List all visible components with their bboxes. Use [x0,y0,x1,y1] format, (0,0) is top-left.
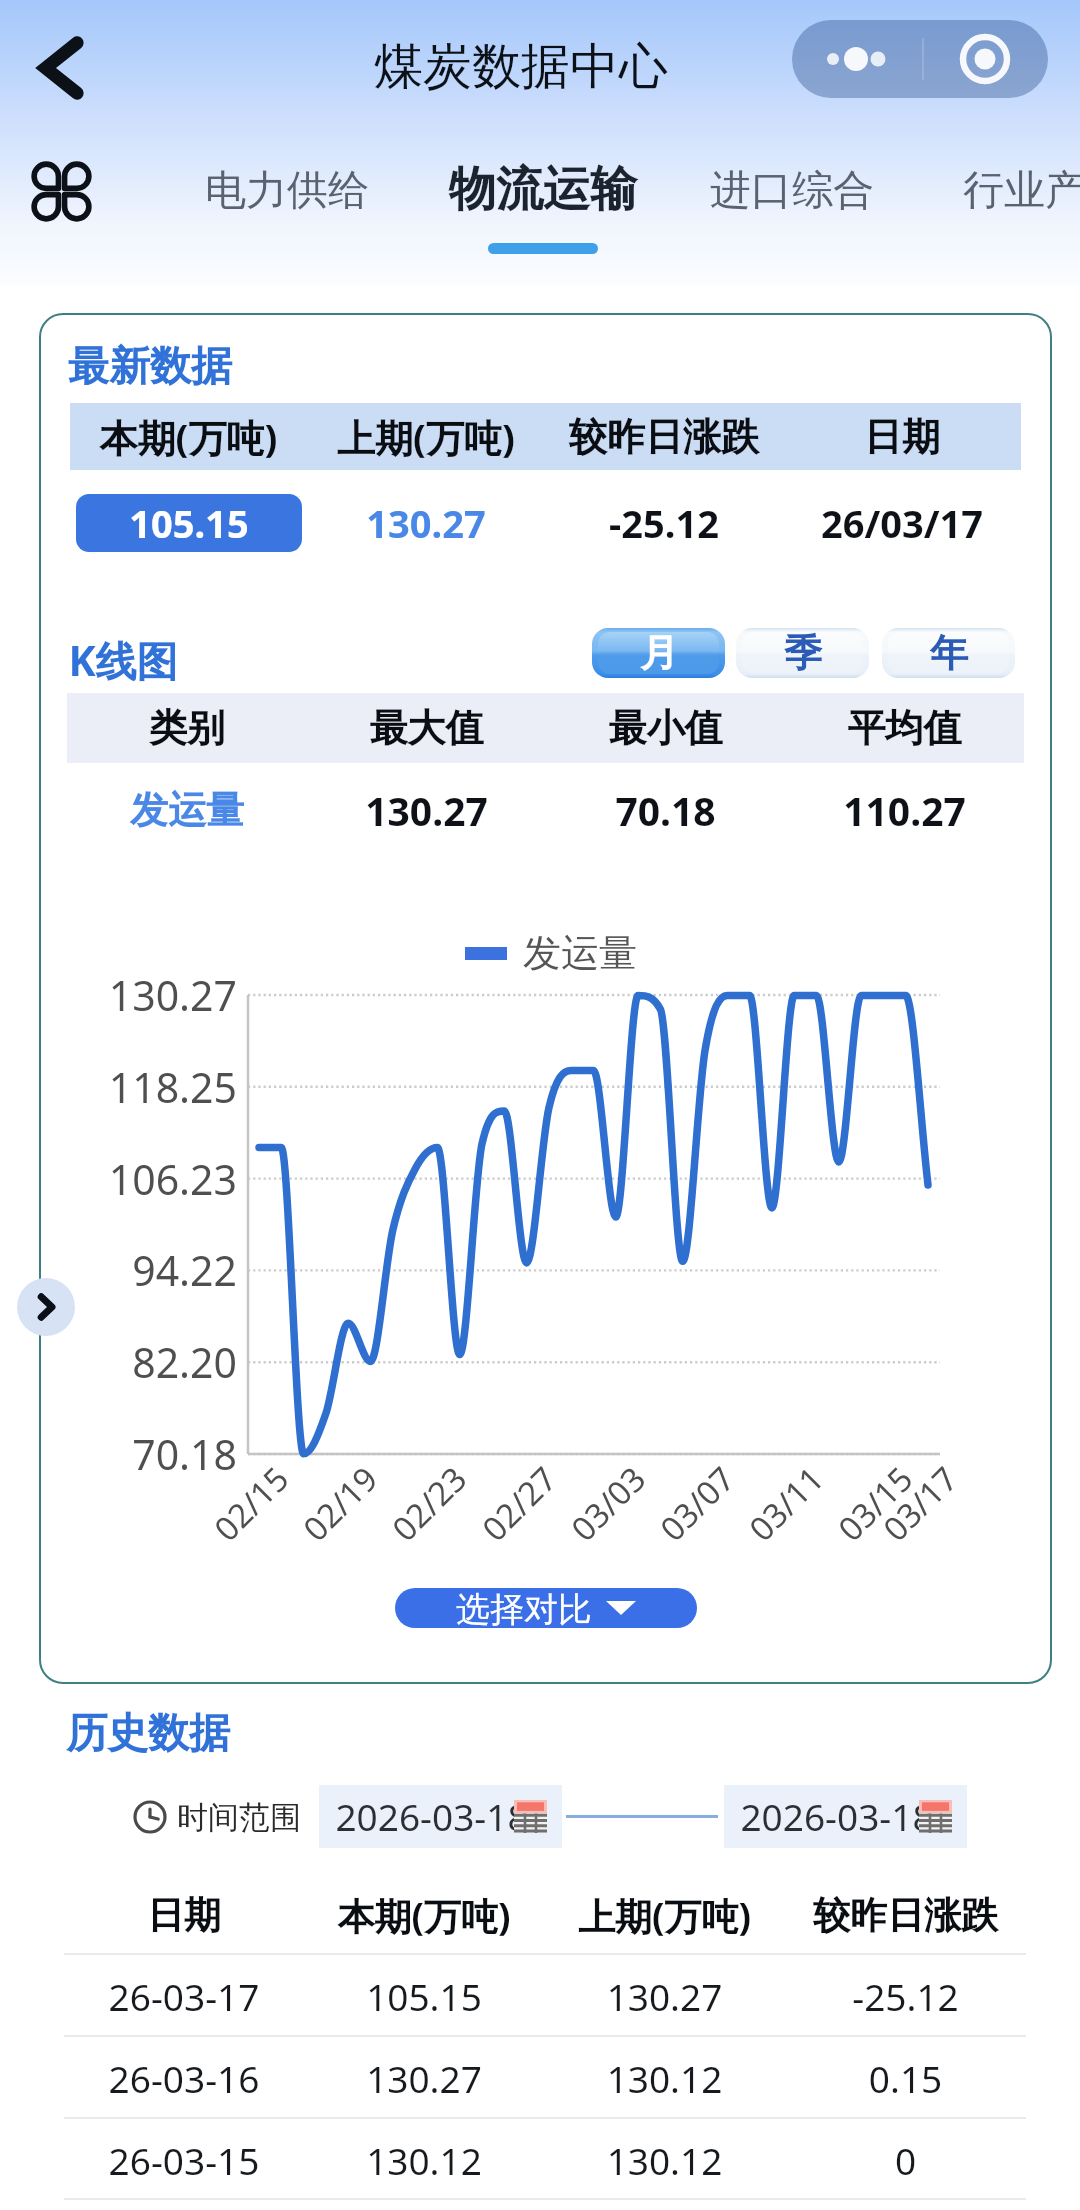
staticText: 105.15 [129,497,249,549]
staticText: K线图 [68,632,178,688]
staticText: 0.15 [785,2053,1026,2103]
staticText: 日期 [64,1892,304,1939]
staticText: 年 [930,629,968,677]
staticText: 130.27 [304,2053,544,2103]
staticText: 130.12 [544,2135,785,2185]
staticText: -25.12 [545,497,783,549]
staticText: 煤炭数据中心 [374,36,668,98]
staticText: 类别 [67,704,307,752]
button[interactable]: Next page [17,1278,75,1336]
button[interactable]: 2026-03-18 [724,1785,967,1848]
staticText: 2026-03-18 [335,1791,529,1841]
staticText: 03/07 [620,1457,744,1580]
staticText: 130.27 [307,497,545,549]
staticText: 94.22 [39,1242,237,1298]
button[interactable]: 26-03-15 [64,2119,1026,2201]
staticText: 03/03 [531,1457,655,1580]
staticText: 03/17 [843,1457,967,1580]
staticText: 季 [784,629,822,677]
staticText: 最大值 [307,704,546,752]
staticText: 02/27 [442,1457,566,1580]
staticText: 上期(万吨) [307,411,545,463]
staticText: 日期 [783,413,1021,461]
staticText: 130.27 [544,1971,785,2021]
button[interactable]: 行业产 [963,160,1080,260]
staticText: 本期(万吨) [304,1890,544,1941]
button[interactable]: Back [20,26,104,110]
staticText: 106.23 [39,1151,237,1207]
staticText: 70.18 [546,784,785,837]
staticText: 最小值 [546,704,785,752]
staticText: 历史数据 [66,1708,230,1760]
staticText: 较昨日涨跌 [785,1892,1026,1939]
button[interactable]: 26-03-16 [64,2037,1026,2119]
staticText: 2026-03-18 [740,1791,934,1841]
button[interactable]: 进口综合 [710,160,874,260]
staticText: -25.12 [785,1971,1026,2021]
staticText: 行业产 [963,165,1080,217]
staticText: 118.25 [39,1059,237,1115]
staticText: 26/03/17 [783,497,1021,549]
button[interactable]: 年 [882,628,1015,678]
staticText: 130.27 [307,784,546,837]
staticText: 26-03-15 [64,2135,304,2185]
staticText: 物流运输 [448,160,638,219]
staticText: 03/11 [709,1457,833,1580]
staticText: 02/15 [174,1457,298,1580]
staticText: 110.27 [785,784,1024,837]
staticText: 70.18 [39,1426,237,1482]
staticText: 130.12 [544,2053,785,2103]
staticText: 0 [785,2135,1026,2185]
staticText: 02/19 [263,1457,387,1580]
button[interactable]: Categories [21,151,102,232]
staticText: 130.12 [304,2135,544,2185]
button[interactable]: Menu [792,20,1048,98]
button[interactable]: 选择对比 [395,1588,697,1628]
staticText: 03/15 [798,1457,922,1580]
button[interactable]: 105.15 [76,494,302,552]
staticText: 平均值 [785,704,1024,752]
staticText: 发运量 [523,929,637,977]
staticText: 月 [640,629,678,677]
staticText: 26-03-16 [64,2053,304,2103]
button[interactable]: 电力供给 [205,160,369,260]
staticText: 105.15 [304,1971,544,2021]
staticText: 选择对比 [456,1588,592,1628]
staticText: 02/23 [352,1457,476,1580]
staticText: 本期(万吨) [70,411,307,463]
staticText: 进口综合 [710,165,874,217]
staticText: 上期(万吨) [544,1890,785,1941]
button[interactable]: 物流运输 [448,160,638,260]
staticText: 26-03-17 [64,1971,304,2021]
button[interactable]: 月 [592,628,725,678]
button[interactable]: 26-03-17 [64,1955,1026,2037]
staticText: 时间范围 [177,1798,301,1837]
staticText: 82.20 [39,1334,237,1390]
staticText: 最新数据 [68,341,232,393]
button[interactable]: 2026-03-18 [319,1785,562,1848]
staticText: 发运量 [67,786,307,834]
button[interactable]: 季 [736,628,869,678]
staticText: 较昨日涨跌 [545,413,783,461]
staticText: 电力供给 [205,165,369,217]
staticText: 130.27 [39,967,237,1023]
